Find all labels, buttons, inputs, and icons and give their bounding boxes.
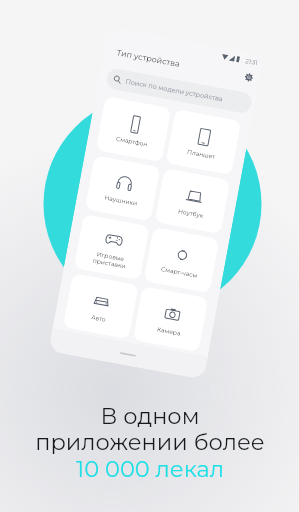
staticText: Наушники [104,193,138,207]
staticText: Ноутбук [177,207,204,219]
staticText: Камера [156,325,181,337]
button[interactable]: Settings [244,72,254,83]
staticText: 21:31 [245,57,259,66]
staticText: Смарт-часы [160,265,198,279]
button[interactable]: Камера [133,286,208,352]
staticText: В одном приложении более [35,402,265,455]
staticText: Авто [91,313,107,323]
staticText: Планшет [186,148,216,160]
staticText: 10 000 лекал [76,455,224,482]
button[interactable]: Смарт-часы [144,227,219,293]
staticText: Поиск по модели устройства [125,77,224,103]
button[interactable]: Планшет [165,109,241,175]
button[interactable]: Ноутбук [154,168,230,234]
button[interactable]: Авто [63,273,139,339]
staticText: Тип устройства [116,47,181,69]
button[interactable]: Смартфон [96,96,171,162]
staticText: Игровые приставки [92,250,128,270]
button[interactable]: Игровые приставки [74,214,150,280]
staticText: Смартфон [115,135,148,147]
button[interactable]: Поиск по модели устройства [105,67,253,115]
button[interactable]: Наушники [85,155,161,221]
